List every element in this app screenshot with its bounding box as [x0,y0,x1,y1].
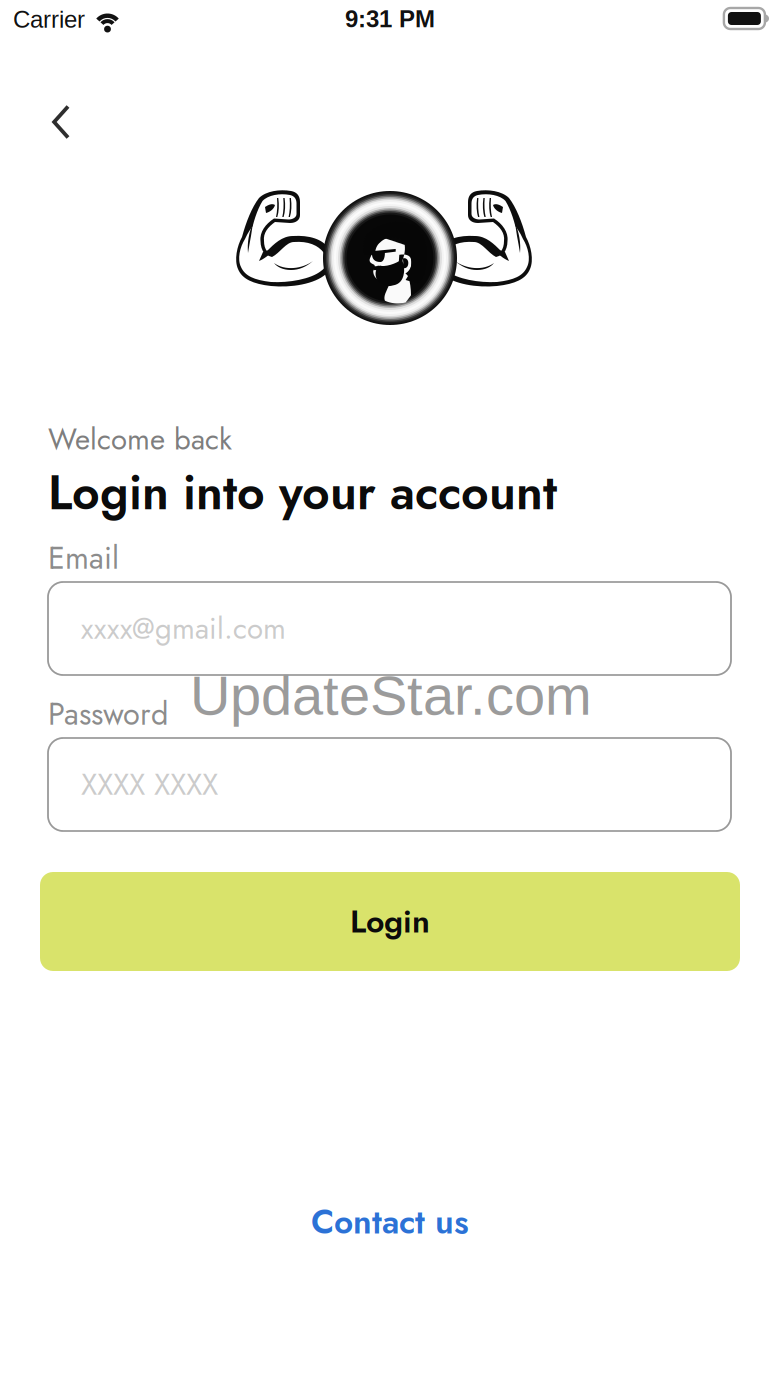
button[interactable]: Back [33,94,89,150]
staticText: Login [350,898,430,945]
button[interactable]: Contact us [0,1202,780,1242]
staticText: XXXX XXXX [81,763,218,806]
staticText: Carrier [13,6,85,33]
staticText: xxxx@gmail.com [81,607,286,650]
staticText: Password [48,692,168,736]
staticText: Login into your account [48,458,557,527]
staticText: Email [48,536,119,580]
staticText: Welcome back [48,418,232,460]
staticText: 9:31 PM [345,6,435,32]
staticText: Contact us [311,1198,469,1246]
staticText: UpdateStar.com [190,664,592,727]
button[interactable]: Login [40,872,740,971]
